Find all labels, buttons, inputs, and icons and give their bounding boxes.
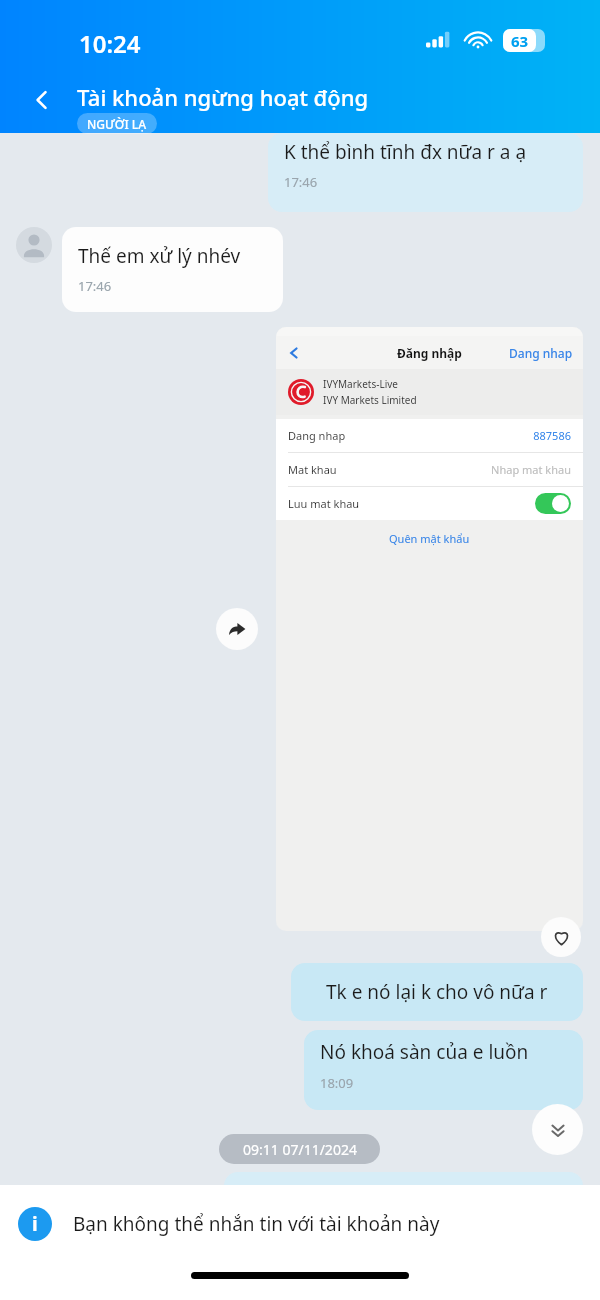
button[interactable]: Ảnh chụp màn hình đăng nhập: [276, 327, 583, 931]
staticText: 18:09: [320, 1074, 354, 1092]
staticText: Đăng nhập: [397, 345, 462, 361]
staticText: IVY Markets Limited: [323, 393, 417, 407]
button[interactable]: Tk e nó lại k cho vô nữa r: [291, 963, 583, 1021]
staticText: 09:11 07/11/2024: [243, 1140, 357, 1159]
staticText: IVYMarkets-Live: [323, 377, 398, 391]
staticText: Dang nhap: [509, 345, 573, 361]
button[interactable]: Quay lại: [20, 78, 64, 122]
staticText: Tài khoản ngừng hoạt động: [77, 82, 369, 112]
button[interactable]: Thả tim: [541, 917, 581, 957]
button[interactable]: i: [18, 1185, 600, 1263]
staticText: Bạn không thể nhắn tin với tài khoản này: [73, 1211, 440, 1237]
staticText: Tk e nó lại k cho vô nữa r: [326, 979, 548, 1005]
button[interactable]: Chuyển tiếp: [216, 608, 258, 650]
button[interactable]: Dang nhap: [288, 419, 571, 452]
button[interactable]: K thể bình tĩnh đx nữa r a ạ: [268, 133, 583, 212]
staticText: 887586: [533, 428, 571, 443]
staticText: 17:46: [284, 173, 318, 191]
staticText: Thế em xử lý nhév: [78, 243, 241, 269]
staticText: 63: [511, 31, 529, 51]
button[interactable]: Nó khoá sàn của e luồn: [304, 1030, 583, 1110]
staticText: 17:46: [78, 277, 112, 295]
staticText: Quên mật khẩu: [389, 531, 470, 546]
staticText: Nhap mat khau: [491, 462, 571, 477]
button[interactable]: Mat khau: [288, 453, 571, 486]
staticText: NGƯỜI LẠ: [87, 116, 147, 132]
staticText: Dang nhap: [288, 428, 346, 443]
staticText: Nó khoá sàn của e luồn: [320, 1039, 529, 1065]
staticText: 10:24: [79, 27, 141, 60]
staticText: Luu mat khau: [288, 496, 360, 511]
button[interactable]: Luu mat khau: [288, 487, 571, 520]
staticText: Mat khau: [288, 462, 337, 477]
button[interactable]: Ảnh đại diện: [16, 227, 52, 263]
button[interactable]: Thế em xử lý nhév: [62, 227, 283, 312]
staticText: K thể bình tĩnh đx nữa r a ạ: [284, 139, 527, 165]
staticText: i: [32, 1211, 38, 1237]
button[interactable]: Cuộn xuống dưới: [532, 1104, 583, 1155]
